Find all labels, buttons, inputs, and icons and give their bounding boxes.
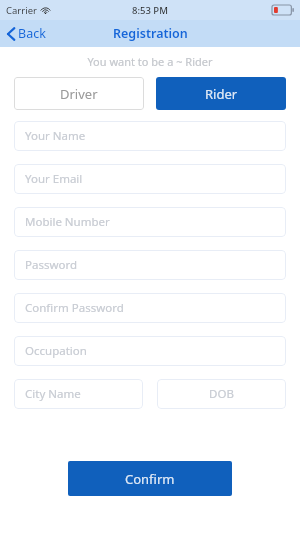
button[interactable]: Occupation [14, 336, 286, 366]
staticText: City Name [25, 386, 81, 402]
staticText: Registration [113, 25, 188, 42]
button[interactable]: Confirm Password [14, 293, 286, 323]
staticText: Password [25, 257, 78, 273]
staticText: Rider [205, 85, 238, 103]
button[interactable]: Your Name [14, 121, 286, 151]
staticText: Confirm [125, 470, 175, 488]
staticText: Confirm Password [25, 300, 124, 316]
button[interactable]: Back [0, 22, 56, 45]
staticText: 8:53 PM [132, 4, 168, 17]
staticText: Your Email [25, 171, 83, 187]
staticText: Occupation [25, 343, 87, 359]
button[interactable]: DOB [157, 379, 286, 409]
staticText: Carrier [6, 4, 37, 17]
button[interactable]: Confirm [68, 461, 232, 496]
other: Back [7, 27, 15, 41]
button[interactable]: City Name [14, 379, 143, 409]
button[interactable]: Driver [14, 77, 144, 110]
button[interactable]: Your Email [14, 164, 286, 194]
staticText: Back [18, 25, 46, 42]
button[interactable]: Password [14, 250, 286, 280]
staticText: You want to be a ~ Rider [0, 54, 300, 69]
staticText: Your Name [25, 128, 86, 144]
button[interactable]: Rider [156, 77, 286, 110]
staticText: DOB [209, 386, 234, 402]
staticText: Driver [60, 85, 98, 103]
button[interactable]: Mobile Number [14, 207, 286, 237]
staticText: Mobile Number [25, 214, 110, 230]
